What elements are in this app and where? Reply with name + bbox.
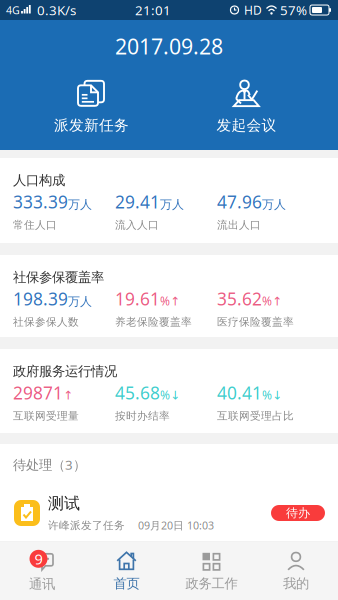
staticText: 政府服务运行情况 bbox=[13, 363, 117, 379]
staticText: 流出人口 bbox=[217, 218, 261, 231]
staticText: % bbox=[262, 387, 272, 403]
staticText: 万人 bbox=[68, 294, 92, 309]
staticText: 0.3K/s bbox=[37, 1, 76, 19]
staticText: 47.96 bbox=[217, 190, 262, 213]
staticText: 57% bbox=[280, 1, 307, 19]
staticText: 养老保险覆盖率 bbox=[115, 315, 192, 328]
staticText: 45.68 bbox=[115, 381, 160, 404]
staticText: 待处理（3） bbox=[13, 456, 86, 473]
staticText: 09月20日 10:03 bbox=[138, 518, 214, 532]
staticText: 21:01 bbox=[135, 1, 171, 19]
staticText: 首页 bbox=[113, 575, 139, 592]
staticText: 40.41 bbox=[217, 381, 262, 404]
staticText: 发起会议 bbox=[216, 116, 276, 134]
staticText: 333.39 bbox=[13, 190, 68, 213]
staticText: ↓ bbox=[170, 389, 180, 402]
staticText: 医疗保险覆盖率 bbox=[217, 315, 294, 328]
staticText: 政务工作 bbox=[185, 575, 237, 592]
staticText: % bbox=[262, 293, 272, 309]
staticText: 按时办结率 bbox=[115, 409, 170, 422]
staticText: 通讯 bbox=[29, 576, 55, 592]
staticText: ↑ bbox=[170, 295, 180, 308]
staticText: 2017.09.28 bbox=[115, 32, 223, 60]
staticText: ↑ bbox=[63, 389, 73, 402]
staticText: 万人 bbox=[68, 197, 92, 212]
staticText: 互联网受理占比 bbox=[217, 409, 294, 422]
button[interactable]: 首页 bbox=[84, 542, 169, 600]
staticText: 19.61 bbox=[115, 287, 160, 310]
staticText: ↑ bbox=[272, 295, 282, 308]
staticText: 流入人口 bbox=[115, 218, 159, 231]
staticText: HD bbox=[244, 2, 262, 18]
staticText: 人口构成 bbox=[13, 172, 65, 188]
staticText: 29.41 bbox=[115, 190, 160, 213]
button[interactable]: 派发新任务 bbox=[14, 76, 169, 136]
staticText: 常住人口 bbox=[13, 218, 57, 231]
staticText: 互联网受理量 bbox=[13, 409, 79, 422]
staticText: 社保参保覆盖率 bbox=[13, 269, 104, 285]
staticText: 29871 bbox=[13, 381, 63, 404]
staticText: 4G bbox=[6, 3, 20, 17]
button[interactable]: 发起会议 bbox=[169, 76, 324, 136]
button[interactable]: 测试 bbox=[0, 485, 338, 541]
staticText: 待办 bbox=[286, 506, 310, 520]
staticText: 9 bbox=[34, 549, 42, 569]
staticText: % bbox=[160, 387, 170, 403]
staticText: 派发新任务 bbox=[54, 116, 129, 134]
staticText: 我的 bbox=[283, 575, 309, 592]
staticText: 测试 bbox=[48, 494, 80, 513]
staticText: 万人 bbox=[160, 197, 184, 212]
staticText: % bbox=[160, 293, 170, 309]
staticText: 35.62 bbox=[217, 287, 262, 310]
button[interactable]: 我的 bbox=[254, 542, 338, 600]
button[interactable]: 9 bbox=[0, 542, 84, 600]
staticText: 许峰派发了任务 bbox=[48, 519, 125, 532]
staticText: ↓ bbox=[272, 389, 282, 402]
staticText: 198.39 bbox=[13, 287, 68, 310]
staticText: 社保参保人数 bbox=[13, 315, 79, 328]
button[interactable]: 政务工作 bbox=[169, 542, 254, 600]
staticText: 万人 bbox=[262, 197, 286, 212]
